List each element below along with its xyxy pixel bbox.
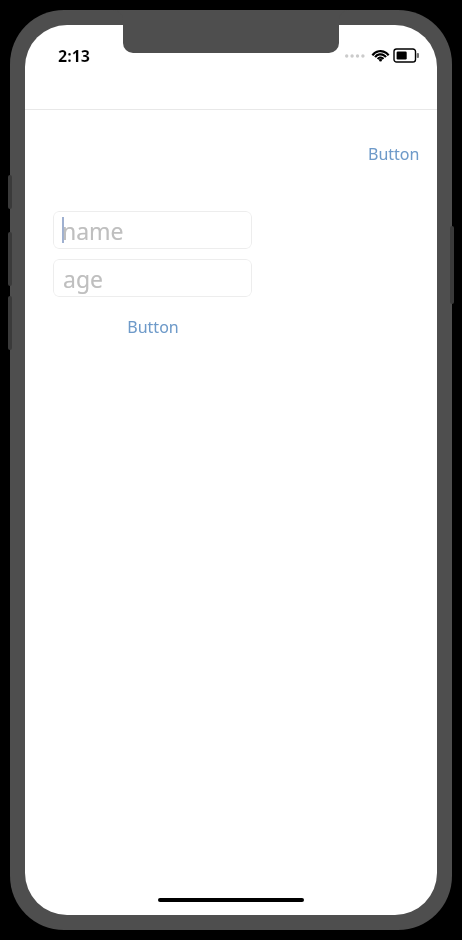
button[interactable]: Button [355,135,433,173]
button[interactable]: age [53,259,252,297]
staticText: 2:13 [58,45,90,67]
staticText: Button [368,143,420,165]
staticText: Button [127,316,179,338]
staticText: age [63,263,104,294]
button[interactable]: name [53,211,252,249]
button[interactable]: Button [113,309,193,345]
staticText: name [62,215,124,246]
